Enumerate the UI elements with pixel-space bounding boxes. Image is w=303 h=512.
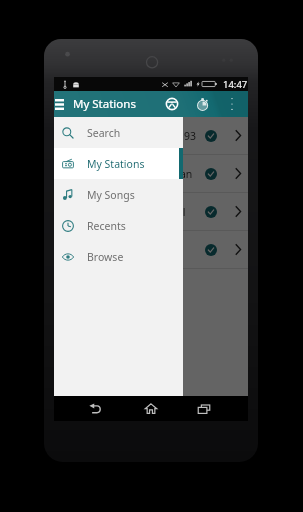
- button[interactable]: More options: [222, 91, 242, 117]
- staticText: My Stations: [87, 157, 145, 171]
- staticText: Browse: [87, 250, 124, 264]
- button[interactable]: Recents: [54, 210, 183, 241]
- button[interactable]: Recent apps: [191, 396, 217, 421]
- staticText: My Stations: [73, 96, 136, 112]
- button[interactable]: Open navigation drawer: [54, 91, 71, 117]
- button[interactable]: Home: [138, 396, 164, 421]
- staticText: Radio Urban Metropolitan: [64, 167, 193, 181]
- staticText: Radio Uno Classic: [64, 243, 151, 257]
- button[interactable]: My Songs: [54, 179, 183, 210]
- button[interactable]: Sleep timer: [191, 91, 215, 117]
- staticText: Radio Club Internacional: [64, 205, 186, 219]
- button[interactable]: Radio Urban Metropolitan: [54, 155, 248, 192]
- button[interactable]: Radio Uno Classic: [54, 231, 248, 268]
- button[interactable]: Radio Disney Music Hits 93: [54, 117, 248, 154]
- staticText: 14:47: [223, 78, 248, 91]
- staticText: Radio Disney Music Hits 93: [64, 129, 196, 143]
- staticText: Recents: [87, 219, 126, 233]
- staticText: My Songs: [87, 188, 135, 202]
- button[interactable]: Drive mode: [160, 91, 184, 117]
- button[interactable]: Search: [54, 117, 183, 148]
- button[interactable]: My Stations: [54, 148, 183, 179]
- button[interactable]: Browse: [54, 241, 183, 272]
- button[interactable]: Radio Club Internacional: [54, 193, 248, 230]
- button[interactable]: Back: [82, 396, 108, 421]
- staticText: Search: [87, 126, 121, 140]
